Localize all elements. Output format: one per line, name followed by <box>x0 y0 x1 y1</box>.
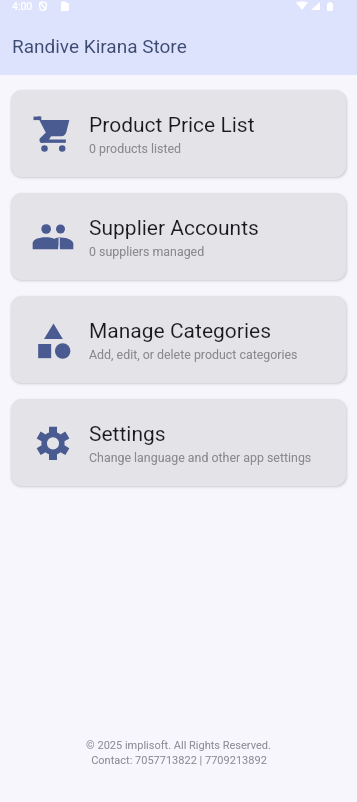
staticText: 0 suppliers managed <box>89 244 205 259</box>
staticText: Change language and other app settings <box>89 450 312 465</box>
staticText: Supplier Accounts <box>89 216 259 241</box>
staticText: 4:00 <box>12 0 33 12</box>
staticText: Randive Kirana Store <box>12 35 187 57</box>
staticText: Manage Categories <box>89 319 271 344</box>
staticText: Add, edit, or delete product categories <box>89 347 298 362</box>
button[interactable]: Product Price List <box>11 90 346 177</box>
button[interactable]: Supplier Accounts <box>11 193 346 280</box>
staticText: Settings <box>89 422 166 447</box>
button[interactable]: Settings <box>11 399 346 486</box>
button[interactable]: Manage Categories <box>11 296 346 383</box>
staticText: Contact: 7057713822 | 7709213892 <box>91 754 267 767</box>
staticText: © 2025 implisoft. All Rights Reserved. <box>86 739 271 752</box>
staticText: Product Price List <box>89 113 255 138</box>
staticText: 0 products listed <box>89 141 181 156</box>
